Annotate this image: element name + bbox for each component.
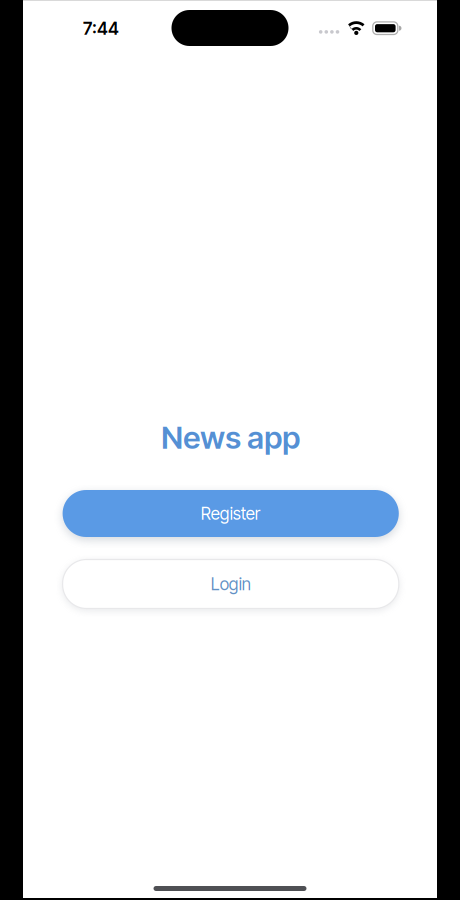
- staticText: News app: [161, 419, 300, 456]
- staticText: 7:44: [83, 18, 119, 39]
- staticText: Login: [211, 574, 251, 594]
- button[interactable]: Login: [63, 559, 399, 608]
- staticText: Register: [201, 503, 261, 524]
- button[interactable]: Register: [63, 490, 399, 537]
